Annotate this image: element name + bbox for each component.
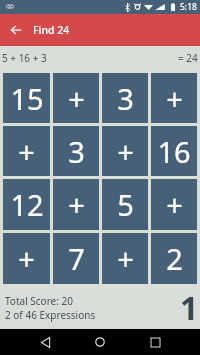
staticText: Find 24 — [33, 23, 70, 37]
staticText: 2 of 46 Expressions — [5, 308, 96, 322]
staticText: Total Score: 20 — [5, 294, 73, 308]
button[interactable]: 15 — [3, 73, 50, 123]
staticText: + — [18, 239, 35, 278]
button[interactable]: 7 — [53, 233, 99, 284]
staticText: + — [68, 185, 85, 224]
button[interactable]: Home — [87, 329, 113, 355]
button[interactable]: 12 — [3, 179, 50, 230]
button[interactable]: + — [102, 126, 148, 176]
button[interactable]: 3 — [102, 73, 148, 123]
button[interactable]: 5 — [102, 179, 148, 230]
button[interactable]: + — [3, 126, 50, 176]
staticText: 5:18 — [180, 1, 197, 13]
staticText: 2 — [166, 239, 183, 278]
staticText: + — [68, 79, 85, 118]
button[interactable]: Back — [32, 329, 58, 355]
staticText: 12 — [10, 185, 44, 224]
staticText: + — [166, 185, 183, 224]
staticText: + — [18, 132, 35, 171]
staticText: = 24 — [178, 51, 198, 65]
staticText: 7 — [68, 239, 85, 278]
button[interactable]: + — [3, 233, 50, 284]
staticText: + — [117, 239, 134, 278]
button[interactable]: 2 — [151, 233, 197, 284]
button[interactable]: + — [151, 73, 197, 123]
staticText: + — [117, 132, 134, 171]
button[interactable]: Recent apps — [142, 329, 168, 355]
staticText: 3 — [68, 132, 85, 171]
button[interactable]: + — [151, 179, 197, 230]
staticText: + — [166, 79, 183, 118]
button[interactable]: + — [102, 233, 148, 284]
staticText: 3 — [117, 79, 134, 118]
staticText: 5 + 16 + 3 — [2, 51, 47, 65]
staticText: 16 — [157, 132, 191, 171]
button[interactable]: Navigate up — [0, 14, 31, 46]
button[interactable]: 3 — [53, 126, 99, 176]
staticText: 15 — [10, 79, 44, 118]
staticText: 1 — [180, 286, 199, 330]
button[interactable]: + — [53, 73, 99, 123]
staticText: 5 — [117, 185, 134, 224]
button[interactable]: + — [53, 179, 99, 230]
button[interactable]: 16 — [151, 126, 197, 176]
